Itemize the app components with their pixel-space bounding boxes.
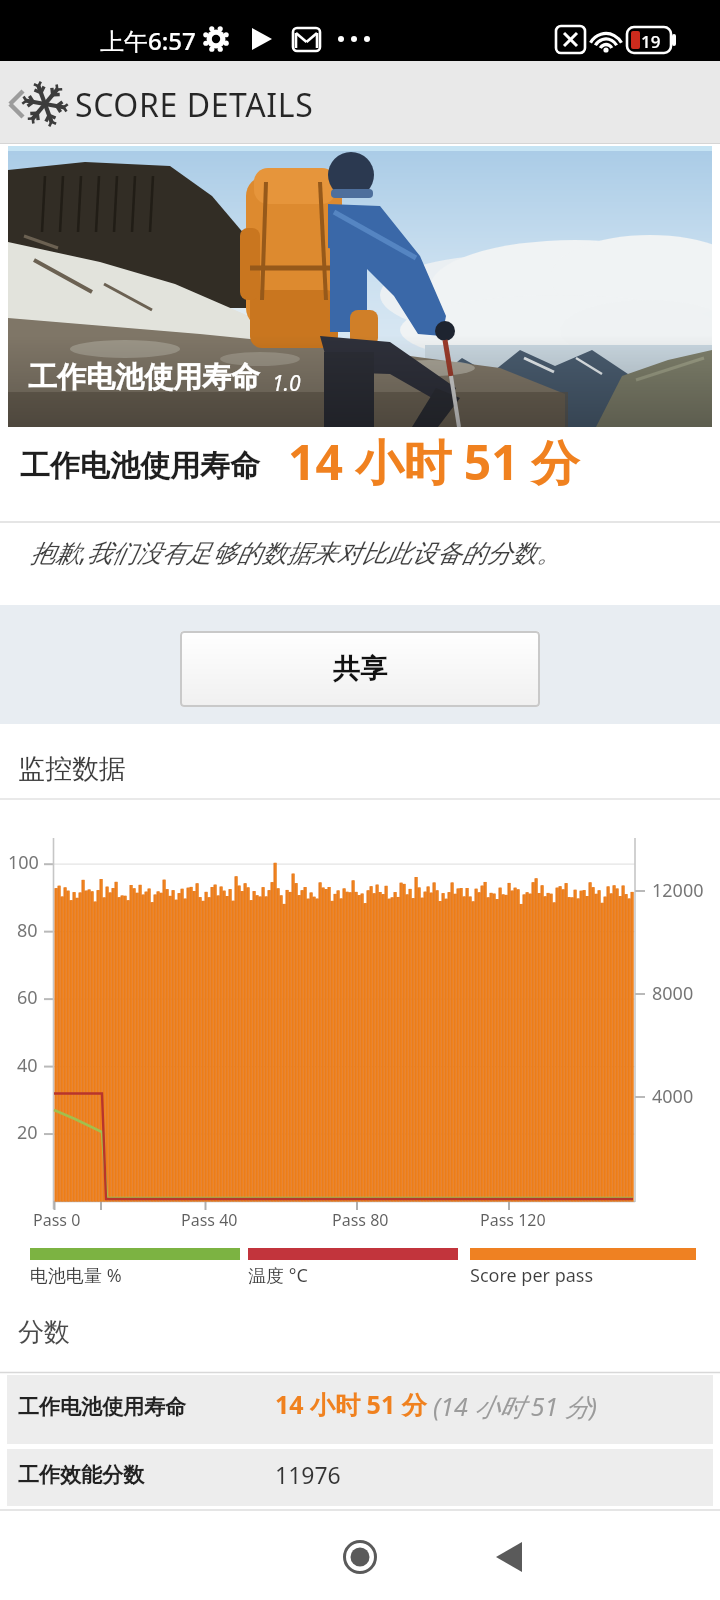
staticText: 共享 xyxy=(333,652,387,686)
staticText: Pass 120 xyxy=(480,1209,546,1231)
button[interactable] xyxy=(7,1375,713,1444)
staticText: 100 xyxy=(8,850,39,875)
staticText: 工作电池使用寿命 xyxy=(18,1394,186,1420)
staticText: 19 xyxy=(641,30,661,53)
staticText: 抱歉,我们没有足够的数据来对比此设备的分数。 xyxy=(30,535,562,569)
staticText: 1.0 xyxy=(272,369,301,398)
button[interactable] xyxy=(480,1527,540,1587)
staticText: 工作电池使用寿命 xyxy=(28,359,260,396)
staticText: 工作效能分数 xyxy=(18,1462,144,1488)
staticText: 工作电池使用寿命 xyxy=(20,447,260,485)
staticText: 温度 °C xyxy=(248,1263,308,1288)
staticText: 40 xyxy=(17,1053,38,1078)
staticText: 分数 xyxy=(18,1316,70,1349)
staticText: 60 xyxy=(17,985,38,1010)
button[interactable] xyxy=(330,1527,390,1587)
staticText: Pass 0 xyxy=(33,1209,81,1231)
staticText: Pass 40 xyxy=(181,1209,238,1231)
staticText: SCORE DETAILS xyxy=(75,83,314,127)
staticText: 4000 xyxy=(652,1084,694,1109)
staticText: 上午6:57 xyxy=(100,24,196,57)
staticText: 14 小时 51 分 xyxy=(275,1387,427,1421)
staticText: (14 小时 51 分) xyxy=(433,1389,598,1423)
staticText: 监控数据 xyxy=(18,752,126,786)
button[interactable] xyxy=(7,1449,713,1506)
staticText: 电池电量 % xyxy=(30,1263,122,1288)
staticText: Pass 80 xyxy=(332,1209,389,1231)
button[interactable]: 共享 xyxy=(180,631,540,707)
staticText: 80 xyxy=(17,918,38,943)
staticText: 8000 xyxy=(652,981,694,1006)
staticText: 12000 xyxy=(652,878,704,903)
staticText: Score per pass xyxy=(470,1263,594,1288)
button[interactable] xyxy=(0,61,70,144)
staticText: 20 xyxy=(17,1120,38,1145)
staticText: 11976 xyxy=(275,1459,341,1490)
button[interactable] xyxy=(0,61,720,144)
staticText: 14 小时 51 分 xyxy=(288,429,580,495)
